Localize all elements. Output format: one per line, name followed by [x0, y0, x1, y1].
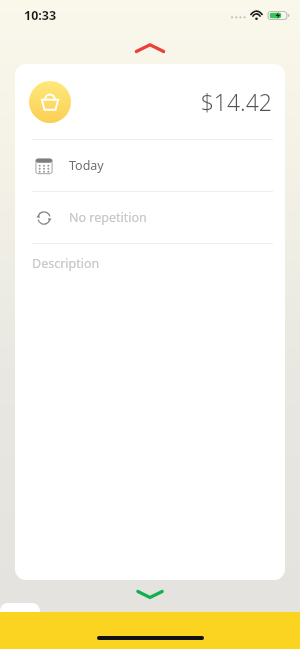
button[interactable]: Description [15, 244, 285, 282]
staticText: Today [69, 157, 104, 174]
staticText: Description [32, 255, 100, 272]
button[interactable]: Today [15, 140, 285, 191]
button[interactable]: Collapse up [132, 40, 168, 56]
button[interactable]: Category: Groceries [29, 81, 71, 123]
button[interactable]: Category: Groceries [15, 64, 285, 139]
staticText: $14.42 [79, 86, 272, 117]
staticText: 10:33 [24, 7, 57, 24]
button[interactable]: Expand down [134, 587, 166, 601]
button[interactable]: No repetition [15, 192, 285, 243]
staticText: No repetition [69, 209, 147, 226]
